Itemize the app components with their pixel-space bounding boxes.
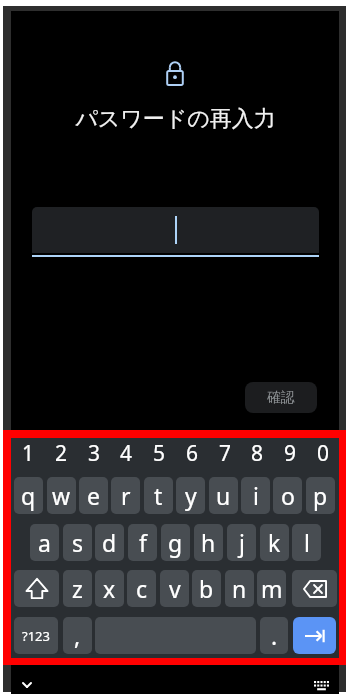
staticText: f bbox=[139, 527, 147, 558]
button[interactable]: 9 bbox=[276, 438, 305, 468]
staticText: r bbox=[121, 480, 131, 511]
staticText: s bbox=[72, 527, 84, 558]
staticText: 5 bbox=[153, 439, 166, 468]
staticText: k bbox=[268, 527, 281, 558]
staticText: 6 bbox=[186, 439, 199, 468]
button[interactable] bbox=[32, 207, 319, 258]
staticText: p bbox=[313, 480, 328, 511]
staticText: ?123 bbox=[22, 627, 50, 645]
staticText: z bbox=[72, 573, 83, 604]
staticText: . bbox=[271, 620, 278, 651]
button[interactable]: e bbox=[79, 477, 108, 514]
button[interactable]: b bbox=[192, 570, 221, 607]
staticText: b bbox=[199, 573, 214, 604]
button[interactable]: m bbox=[257, 570, 286, 607]
staticText: w bbox=[52, 480, 71, 511]
button[interactable]: n bbox=[225, 570, 254, 607]
button[interactable]: Hide keyboard bbox=[14, 672, 40, 698]
button[interactable]: r bbox=[111, 477, 140, 514]
button[interactable]: t bbox=[144, 477, 173, 514]
staticText: 確認 bbox=[267, 389, 295, 407]
button[interactable]: u bbox=[209, 477, 238, 514]
button[interactable]: c bbox=[127, 570, 156, 607]
button[interactable]: i bbox=[241, 477, 270, 514]
staticText: m bbox=[261, 573, 283, 604]
staticText: l bbox=[304, 527, 310, 558]
button[interactable]: h bbox=[194, 524, 223, 561]
button[interactable]: v bbox=[160, 570, 189, 607]
staticText: i bbox=[253, 480, 259, 511]
button[interactable]: Backspace bbox=[292, 570, 337, 607]
button[interactable]: q bbox=[14, 477, 43, 514]
button[interactable]: j bbox=[227, 524, 256, 561]
button[interactable]: 確認 bbox=[245, 382, 317, 413]
button[interactable]: 1 bbox=[14, 438, 43, 468]
staticText: q bbox=[21, 480, 36, 511]
button[interactable]: p bbox=[306, 477, 335, 514]
button[interactable]: y bbox=[176, 477, 205, 514]
button[interactable]: w bbox=[47, 477, 76, 514]
button[interactable]: Enter bbox=[293, 617, 336, 654]
button[interactable]: Switch keyboard bbox=[308, 672, 334, 698]
staticText: g bbox=[168, 527, 183, 558]
staticText: , bbox=[74, 620, 81, 651]
button[interactable]: 6 bbox=[178, 438, 207, 468]
staticText: t bbox=[154, 480, 163, 511]
staticText: d bbox=[102, 527, 117, 558]
button[interactable]: 8 bbox=[243, 438, 272, 468]
staticText: y bbox=[185, 480, 197, 511]
staticText: 3 bbox=[88, 439, 101, 468]
button[interactable]: 3 bbox=[80, 438, 109, 468]
button[interactable]: l bbox=[292, 524, 321, 561]
button[interactable]: , bbox=[63, 617, 92, 654]
staticText: 0 bbox=[317, 439, 330, 468]
button[interactable]: d bbox=[95, 524, 124, 561]
button[interactable]: x bbox=[95, 570, 124, 607]
button[interactable]: 7 bbox=[211, 438, 240, 468]
button[interactable]: ?123 bbox=[14, 617, 58, 654]
button[interactable]: g bbox=[161, 524, 190, 561]
staticText: 8 bbox=[251, 439, 264, 468]
staticText: o bbox=[281, 480, 295, 511]
button[interactable]: o bbox=[273, 477, 302, 514]
staticText: 2 bbox=[55, 439, 68, 468]
button[interactable]: f bbox=[128, 524, 157, 561]
staticText: v bbox=[169, 573, 181, 604]
staticText: u bbox=[216, 480, 231, 511]
button[interactable]: 5 bbox=[145, 438, 174, 468]
button[interactable]: . bbox=[260, 617, 288, 654]
button[interactable]: 2 bbox=[47, 438, 76, 468]
button[interactable]: Shift bbox=[14, 570, 59, 607]
staticText: 7 bbox=[219, 439, 232, 468]
staticText: x bbox=[103, 573, 116, 604]
button[interactable]: 4 bbox=[112, 438, 141, 468]
button[interactable]: 0 bbox=[309, 438, 338, 468]
staticText: j bbox=[239, 527, 245, 558]
button[interactable]: k bbox=[260, 524, 289, 561]
staticText: a bbox=[38, 527, 51, 558]
button[interactable]: s bbox=[63, 524, 92, 561]
staticText: n bbox=[232, 573, 247, 604]
staticText: 1 bbox=[22, 439, 35, 468]
staticText: e bbox=[87, 480, 100, 511]
staticText: h bbox=[201, 527, 216, 558]
button[interactable]: z bbox=[63, 570, 92, 607]
staticText: 4 bbox=[120, 439, 133, 468]
staticText: c bbox=[136, 573, 148, 604]
staticText: パスワードの再入力 bbox=[75, 105, 276, 133]
button[interactable]: a bbox=[30, 524, 59, 561]
staticText: 9 bbox=[284, 439, 297, 468]
